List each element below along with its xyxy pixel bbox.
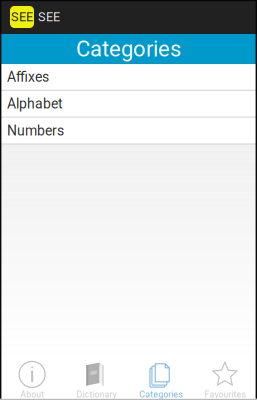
button[interactable]: Categories: [128, 355, 193, 400]
staticText: Categories: [76, 36, 181, 62]
staticText: Affixes: [7, 69, 49, 85]
staticText: Categories: [139, 389, 182, 399]
button[interactable]: About: [0, 355, 64, 400]
button[interactable]: Numbers: [0, 118, 257, 145]
button[interactable]: Dictionary: [64, 355, 128, 400]
button[interactable]: Alphabet: [0, 91, 257, 118]
button[interactable]: Affixes: [0, 64, 257, 91]
staticText: About: [20, 389, 44, 399]
staticText: Dictionary: [76, 389, 116, 399]
staticText: SEE: [38, 10, 60, 24]
staticText: Numbers: [7, 122, 64, 139]
staticText: SEE: [11, 10, 33, 24]
staticText: Alphabet: [7, 96, 63, 112]
staticText: Favourites: [204, 389, 245, 399]
button[interactable]: Favourites: [193, 355, 257, 400]
